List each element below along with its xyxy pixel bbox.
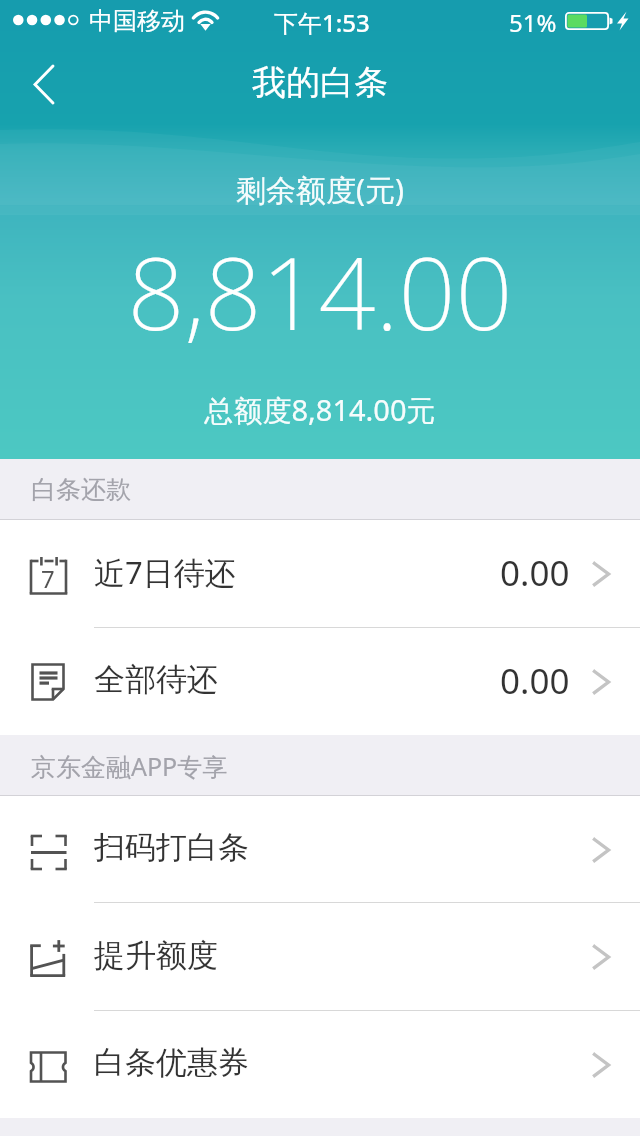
staticText: 8,814.00 (0, 223, 640, 359)
staticText: 中国移动 (89, 6, 185, 36)
staticText: 白条优惠券 (94, 1043, 249, 1082)
staticText: 近7日待还 (94, 551, 236, 593)
staticText: 7 (41, 562, 55, 595)
button[interactable]: 白条优惠券 (0, 1011, 640, 1118)
staticText: 0.00 (500, 549, 570, 597)
button[interactable]: 提升额度 (0, 903, 640, 1011)
staticText: 京东金融APP专享 (31, 749, 228, 783)
staticText: 51% (509, 6, 557, 39)
staticText: 总额度8,814.00元 (0, 390, 640, 430)
staticText: 全部待还 (94, 660, 218, 699)
staticText: 剩余额度(元) (0, 169, 640, 210)
staticText: 我的白条 (252, 61, 388, 104)
staticText: 提升额度 (94, 936, 218, 975)
button[interactable]: 扫码打白条 (0, 796, 640, 903)
staticText: 0.00 (500, 657, 570, 705)
button[interactable]: Back (0, 38, 86, 126)
staticText: 扫码打白条 (94, 828, 249, 867)
staticText: 白条还款 (31, 474, 131, 505)
staticText: 下午1:53 (274, 6, 370, 39)
button[interactable]: 全部待还 (0, 628, 640, 735)
button[interactable]: 7 (0, 520, 640, 628)
